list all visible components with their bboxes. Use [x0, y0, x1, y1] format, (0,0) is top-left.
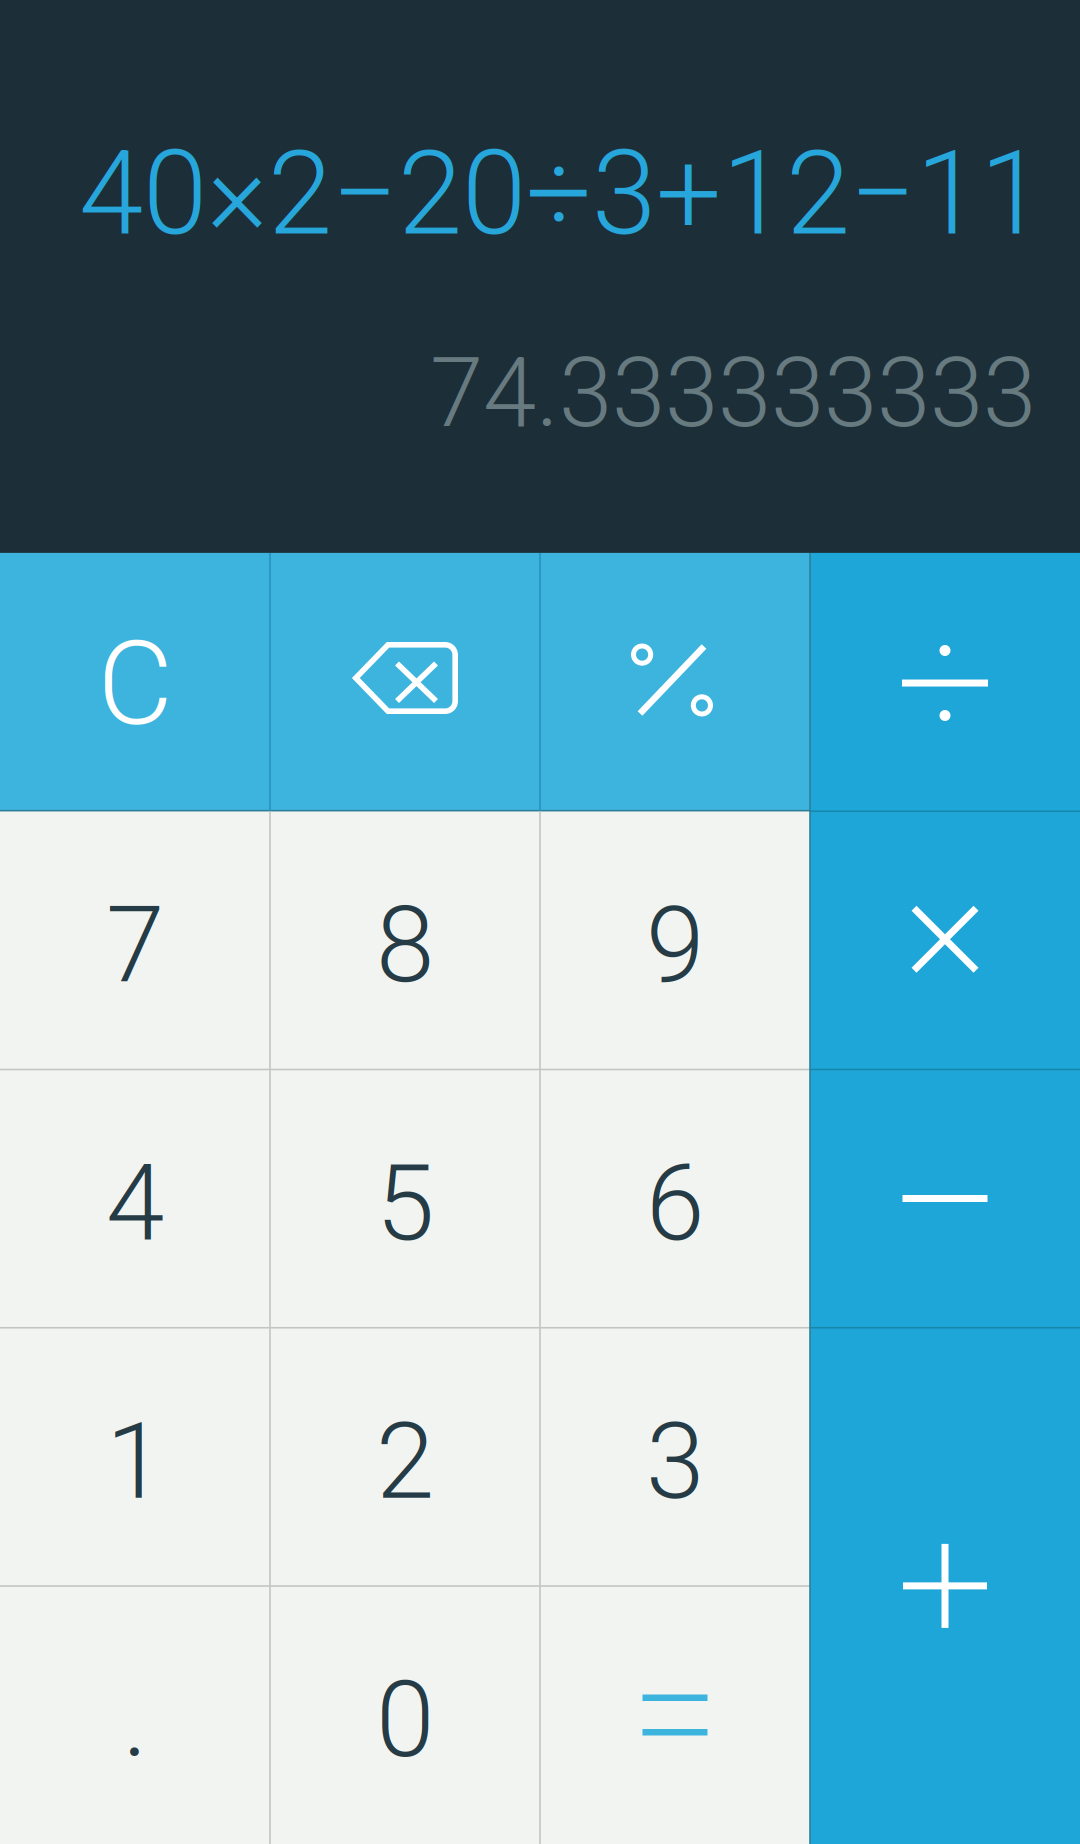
staticText: 1 [106, 1400, 164, 1523]
staticText: 9 [646, 883, 704, 1007]
staticText: 40×2−20÷3+12−11 [79, 126, 1044, 262]
button[interactable]: 2 [270, 1328, 540, 1586]
button[interactable]: 0 [270, 1586, 540, 1844]
button[interactable]: Add [810, 1328, 1080, 1844]
staticText: 5 [376, 1142, 434, 1265]
button[interactable]: 3 [540, 1328, 810, 1586]
staticText: C [97, 616, 172, 752]
button[interactable]: Multiply [810, 811, 1080, 1069]
button[interactable]: 6 [540, 1069, 810, 1328]
staticText: 0 [376, 1658, 434, 1782]
staticText: 8 [376, 883, 434, 1007]
button[interactable]: 7 [0, 811, 270, 1069]
button[interactable]: 9 [540, 811, 810, 1069]
button[interactable]: 1 [0, 1328, 270, 1586]
staticText: 2 [376, 1400, 434, 1523]
staticText: 74.333333333 [430, 337, 1036, 449]
staticText: 4 [106, 1142, 164, 1265]
button[interactable]: . [0, 1586, 270, 1844]
button[interactable]: Clear [0, 553, 270, 811]
button[interactable]: 5 [270, 1069, 540, 1328]
button[interactable]: Equals [540, 1586, 810, 1844]
button[interactable]: Backspace [270, 553, 540, 811]
staticText: 7 [106, 883, 164, 1007]
button[interactable]: Percent [540, 553, 810, 811]
button[interactable]: 4 [0, 1069, 270, 1328]
button[interactable]: 8 [270, 811, 540, 1069]
button[interactable]: Divide [810, 553, 1080, 811]
staticText: . [122, 1658, 147, 1782]
staticText: 3 [646, 1400, 704, 1523]
button[interactable]: Subtract [810, 1069, 1080, 1328]
staticText: 6 [646, 1142, 704, 1265]
